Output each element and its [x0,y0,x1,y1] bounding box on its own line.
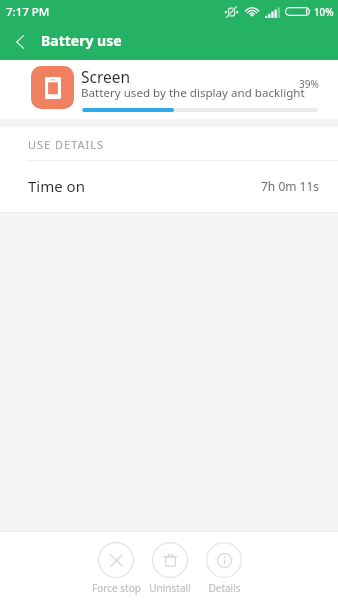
staticText: 7h 0m 11s [261,178,320,194]
staticText: USE DETAILS [28,137,105,152]
staticText: 39% [299,77,319,91]
staticText: 10% [314,6,334,19]
staticText: Battery used by the display and backligh… [81,85,305,101]
staticText: Details [208,581,241,595]
button[interactable]: Back [0,24,40,60]
staticText: Uninstall [149,581,191,595]
button[interactable]: Uninstall [143,532,197,595]
button[interactable]: Force stop [89,532,143,595]
staticText: 7:17 PM [6,4,50,20]
button[interactable]: Time on [0,161,338,212]
staticText: Force stop [92,581,141,595]
staticText: Time on [28,176,85,196]
staticText: Battery use [41,31,122,50]
staticText: Screen [81,66,131,87]
button[interactable]: Screen [0,60,338,119]
button[interactable]: Details [197,532,251,595]
